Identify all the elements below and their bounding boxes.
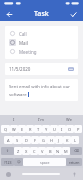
staticText: L <box>74 138 77 143</box>
button[interactable]: Symbols <box>1 158 14 166</box>
button[interactable]: Shift <box>1 147 14 155</box>
button[interactable]: H <box>47 136 55 144</box>
staticText: S <box>16 138 19 143</box>
button[interactable]: Save <box>68 9 79 20</box>
button[interactable]: R <box>26 125 34 133</box>
staticText: A <box>7 138 10 143</box>
button[interactable]: Q <box>1 125 10 133</box>
staticText: O <box>68 127 72 132</box>
button[interactable]: L <box>71 136 79 144</box>
button[interactable]: V <box>38 147 46 155</box>
staticText: P <box>77 127 80 132</box>
staticText: K <box>66 138 69 143</box>
staticText: ?123 <box>4 160 12 165</box>
staticText: H <box>50 138 53 143</box>
button[interactable]: N <box>54 147 62 155</box>
button[interactable]: I <box>58 125 66 133</box>
button[interactable]: Backspace <box>70 147 82 155</box>
staticText: return <box>69 160 80 165</box>
button[interactable]: O <box>66 125 74 133</box>
staticText: X <box>25 149 28 154</box>
staticText: U <box>53 127 56 132</box>
staticText: Task <box>34 9 49 19</box>
staticText: ☺ <box>17 160 21 164</box>
staticText: J <box>58 138 60 143</box>
staticText: C <box>33 149 36 154</box>
button[interactable]: K <box>63 136 71 144</box>
button[interactable]: I'm <box>27 115 55 123</box>
button[interactable]: Switch keyboard <box>5 171 12 178</box>
button[interactable]: Voice input <box>71 171 78 178</box>
staticText: Call <box>19 31 27 37</box>
button[interactable]: Return <box>66 158 82 166</box>
staticText: I <box>13 117 15 122</box>
button[interactable]: Mail <box>9 38 74 47</box>
staticText: software <box>9 91 27 97</box>
button[interactable]: E <box>18 125 26 133</box>
button[interactable]: S <box>13 136 22 144</box>
staticText: V <box>41 149 44 154</box>
button[interactable]: Meeting <box>9 47 74 56</box>
staticText: E <box>21 127 24 132</box>
button[interactable]: Y <box>42 125 50 133</box>
staticText: M <box>64 149 68 154</box>
staticText: W <box>12 127 16 132</box>
staticText: space <box>40 160 50 165</box>
staticText: T <box>37 127 40 132</box>
staticText: I <box>61 127 63 132</box>
button[interactable]: X <box>22 147 30 155</box>
button[interactable]: Call <box>9 29 74 38</box>
staticText: N <box>56 149 60 154</box>
button[interactable]: P <box>74 125 82 133</box>
button[interactable]: A <box>4 136 13 144</box>
button[interactable]: J <box>55 136 63 144</box>
button[interactable]: T <box>34 125 42 133</box>
staticText: G <box>42 138 45 143</box>
staticText: 11/5/2020 <box>9 66 31 72</box>
button[interactable]: Space <box>23 158 66 166</box>
button[interactable]: W <box>10 125 18 133</box>
staticText: ⇧ <box>6 149 9 153</box>
staticText: We <box>66 117 72 122</box>
staticText: Meeting <box>19 49 37 55</box>
button[interactable]: Back <box>4 9 15 20</box>
staticText: Mail <box>19 40 28 46</box>
button[interactable]: 11/5/2020 <box>5 63 78 75</box>
button[interactable]: F <box>31 136 39 144</box>
button[interactable]: We <box>55 115 83 123</box>
button[interactable]: B <box>46 147 54 155</box>
staticText: R <box>29 127 32 132</box>
button[interactable]: U <box>50 125 58 133</box>
button[interactable]: Z <box>14 147 22 155</box>
staticText: Z <box>17 149 20 154</box>
other: Pick date <box>68 66 74 72</box>
staticText: Q <box>4 127 8 132</box>
staticText: Sent email with info about our <box>9 83 71 89</box>
staticText: I'm <box>38 117 44 122</box>
staticText: Y <box>45 127 48 132</box>
staticText: ⌫ <box>74 149 79 153</box>
staticText: F <box>34 138 37 143</box>
button[interactable]: Sent email with info about our <box>5 79 78 101</box>
button[interactable]: D <box>22 136 31 144</box>
button[interactable]: G <box>39 136 47 144</box>
button[interactable]: C <box>30 147 38 155</box>
staticText: D <box>25 138 28 143</box>
button[interactable]: Emoji <box>14 158 23 166</box>
button[interactable]: I <box>0 115 27 123</box>
staticText: B <box>49 149 52 154</box>
button[interactable]: M <box>62 147 70 155</box>
